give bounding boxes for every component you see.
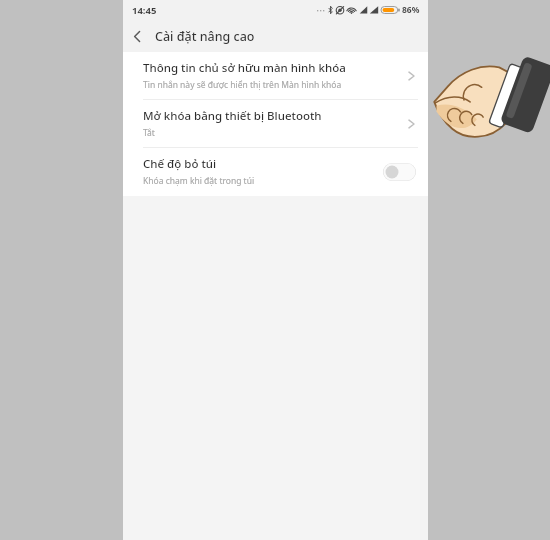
staticText: Mở khóa bằng thiết bị Bluetooth bbox=[143, 108, 322, 124]
staticText: Thông tin chủ sở hữu màn hình khóa bbox=[143, 60, 346, 76]
staticText: Khóa chạm khi đặt trong túi bbox=[143, 175, 255, 187]
button[interactable]: Mở khóa bằng thiết bị Bluetooth bbox=[123, 100, 428, 147]
staticText: Chế độ bỏ túi bbox=[143, 156, 217, 172]
staticText: Tin nhắn này sẽ được hiển thị trên Màn h… bbox=[143, 79, 342, 91]
staticText: 86% bbox=[402, 4, 420, 16]
button[interactable]: Chế độ bỏ túi bbox=[123, 148, 428, 195]
button[interactable]: Pocket mode toggle bbox=[383, 163, 416, 181]
staticText: 14:45 bbox=[132, 4, 157, 17]
staticText: Tắt bbox=[143, 127, 155, 139]
staticText: Cài đặt nâng cao bbox=[155, 28, 255, 45]
button[interactable]: Thông tin chủ sở hữu màn hình khóa bbox=[123, 52, 428, 99]
button[interactable]: Back bbox=[123, 22, 151, 50]
